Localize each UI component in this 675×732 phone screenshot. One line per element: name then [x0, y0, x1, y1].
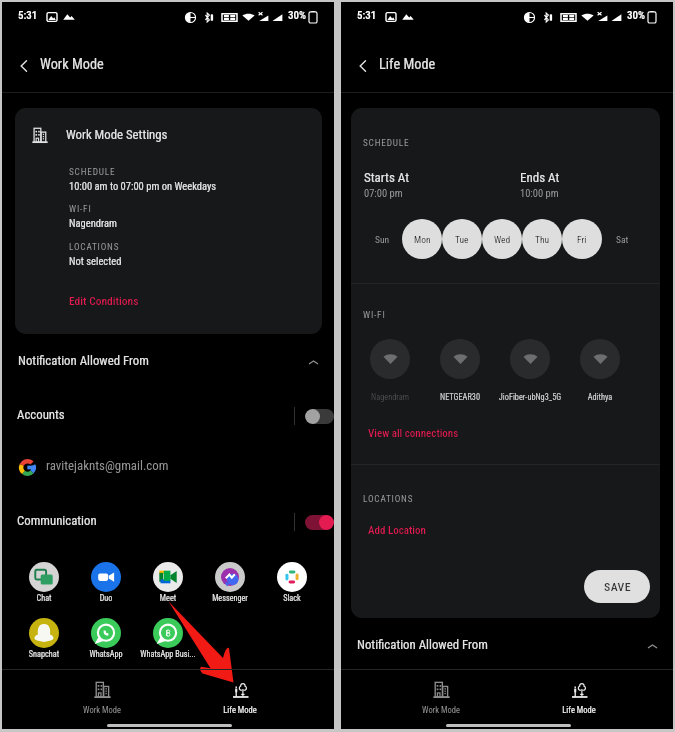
staticText: SCHEDULE	[363, 137, 410, 148]
staticText: Sun	[375, 234, 390, 245]
button[interactable]: Chat	[13, 561, 75, 606]
staticText: Sat	[616, 234, 629, 245]
button[interactable]: NETGEAR30	[425, 339, 495, 399]
staticText: 07:00 pm	[364, 187, 403, 199]
button[interactable]: Sun	[362, 219, 402, 259]
button[interactable]: Meet	[137, 561, 199, 606]
staticText: Wed	[494, 234, 511, 245]
staticText: 5:31	[18, 9, 38, 22]
staticText: SCHEDULE	[69, 166, 116, 177]
staticText: WI-FI	[363, 309, 386, 320]
staticText: Mon	[414, 234, 431, 245]
staticText: Life Mode	[539, 705, 619, 715]
staticText: Thu	[535, 234, 550, 245]
button[interactable]: Work Mode	[62, 674, 142, 719]
button[interactable]: Nagendram	[355, 339, 425, 399]
staticText: NETGEAR30	[425, 392, 495, 402]
staticText: LOCATIONS	[363, 493, 414, 504]
button[interactable]: Slack	[261, 561, 323, 606]
staticText: Ends At	[520, 170, 560, 185]
button[interactable]: SAVE	[584, 570, 650, 603]
staticText: 10:00 am to 07:00 pm on Weekdays	[69, 180, 217, 192]
staticText: Life Mode	[379, 56, 436, 73]
staticText: 30%	[627, 9, 645, 22]
button[interactable]: Edit Conditions	[65, 289, 145, 313]
button[interactable]: Messenger	[199, 561, 261, 606]
button[interactable]: Notification Allowed From	[341, 632, 673, 660]
button[interactable]: Sat	[602, 219, 642, 259]
staticText: Work Mode	[62, 705, 142, 715]
staticText: WhatsApp	[75, 649, 137, 659]
button[interactable]: Disabled	[305, 409, 334, 424]
staticText: Not selected	[69, 255, 122, 267]
staticText: Notification Allowed From	[18, 353, 149, 368]
staticText: Nagendram	[355, 392, 425, 402]
staticText: SAVE	[604, 580, 631, 594]
staticText: Life Mode	[200, 705, 280, 715]
button[interactable]: Work Mode	[401, 674, 481, 719]
button[interactable]: Enabled	[305, 515, 334, 530]
staticText: LOCATIONS	[69, 241, 120, 252]
button[interactable]: WhatsApp Busi...	[137, 617, 199, 662]
staticText: Work Mode Settings	[66, 127, 168, 142]
staticText: Work Mode	[40, 56, 104, 73]
staticText: Work Mode	[401, 705, 481, 715]
staticText: Add Location	[368, 524, 426, 537]
button[interactable]: Snapchat	[13, 617, 75, 662]
staticText: WhatsApp Busi...	[137, 649, 199, 659]
button[interactable]: Adithya	[565, 339, 635, 399]
button[interactable]: Tue	[442, 219, 482, 259]
button[interactable]: Thu	[522, 219, 562, 259]
staticText: Slack	[261, 593, 323, 603]
button[interactable]: Fri	[562, 219, 602, 259]
button[interactable]: Back	[352, 55, 374, 77]
staticText: Snapchat	[13, 649, 75, 659]
staticText: Starts At	[364, 170, 410, 185]
button[interactable]: Back	[13, 55, 35, 77]
staticText: Communication	[17, 513, 97, 528]
button[interactable]: WhatsApp	[75, 617, 137, 662]
staticText: 10:00 pm	[520, 187, 559, 199]
staticText: 5:31	[357, 9, 377, 22]
staticText: JioFiber-ubNg3_5G	[495, 392, 565, 402]
button[interactable]: Life Mode	[539, 674, 619, 719]
button[interactable]	[15, 108, 322, 334]
staticText: Duo	[75, 593, 137, 603]
staticText: Nagendram	[69, 217, 117, 229]
button[interactable]: Life Mode	[200, 674, 280, 719]
staticText: Meet	[137, 593, 199, 603]
staticText: Fri	[577, 234, 587, 245]
button[interactable]: Notification Allowed From	[2, 348, 334, 376]
staticText: Messenger	[199, 593, 261, 603]
staticText: View all connections	[368, 427, 459, 440]
button[interactable]: ravitejaknts@gmail.com	[2, 455, 334, 479]
button[interactable]: JioFiber-ubNg3_5G	[495, 339, 565, 399]
staticText: 30%	[288, 9, 306, 22]
staticText: ravitejaknts@gmail.com	[46, 458, 169, 473]
staticText: Tue	[455, 234, 469, 245]
staticText: Notification Allowed From	[357, 637, 488, 652]
staticText: WI-FI	[69, 203, 92, 214]
button[interactable]: View all connections	[363, 422, 467, 446]
staticText: Adithya	[565, 392, 635, 402]
staticText: Chat	[13, 593, 75, 603]
staticText: Edit Conditions	[69, 294, 139, 307]
button[interactable]: Wed	[482, 219, 522, 259]
button[interactable]: Duo	[75, 561, 137, 606]
button[interactable]: Mon	[402, 219, 442, 259]
staticText: Accounts	[17, 407, 65, 422]
button[interactable]: Add Location	[363, 519, 441, 543]
